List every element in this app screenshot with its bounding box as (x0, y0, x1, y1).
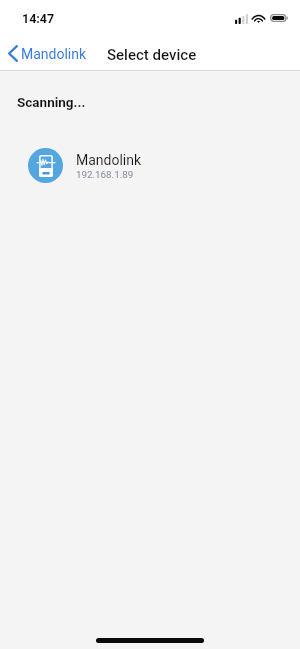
staticText: 192.168.1.89 (76, 169, 134, 180)
button[interactable]: Mandolink (0, 141, 300, 190)
staticText: Scanning... (17, 94, 86, 110)
staticText: Mandolink (76, 152, 142, 168)
button[interactable]: Back (5, 43, 90, 64)
staticText: 14:47 (22, 11, 55, 26)
staticText: Select device (107, 46, 197, 64)
other: Back (8, 45, 18, 62)
staticText: Mandolink (21, 46, 87, 62)
